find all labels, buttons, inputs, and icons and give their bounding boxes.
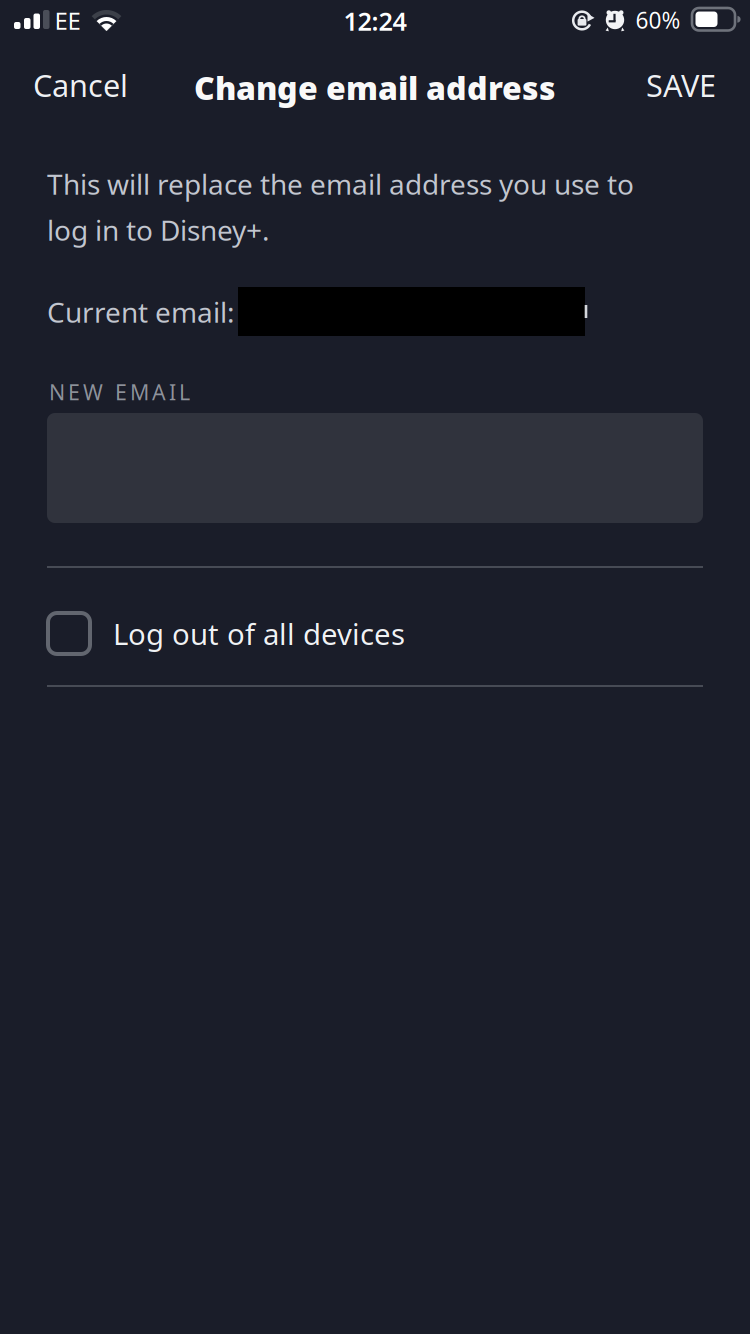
staticText: NEW EMAIL <box>49 378 190 406</box>
staticText: 12:24 <box>343 4 406 38</box>
staticText: 60% <box>635 5 680 35</box>
staticText: This will replace the email address you … <box>47 165 634 203</box>
button[interactable]: SAVE <box>646 65 716 105</box>
staticText: EE <box>54 5 80 36</box>
button[interactable]: Log out of all devices <box>48 613 405 654</box>
staticText: log in to Disney+. <box>47 211 270 249</box>
staticText: SAVE <box>646 65 716 105</box>
staticText: Change email address <box>194 66 556 109</box>
staticText: Log out of all devices <box>113 614 405 653</box>
staticText: Current email: <box>47 293 235 331</box>
button[interactable]: Cancel <box>33 65 128 105</box>
staticText: Cancel <box>33 65 128 105</box>
